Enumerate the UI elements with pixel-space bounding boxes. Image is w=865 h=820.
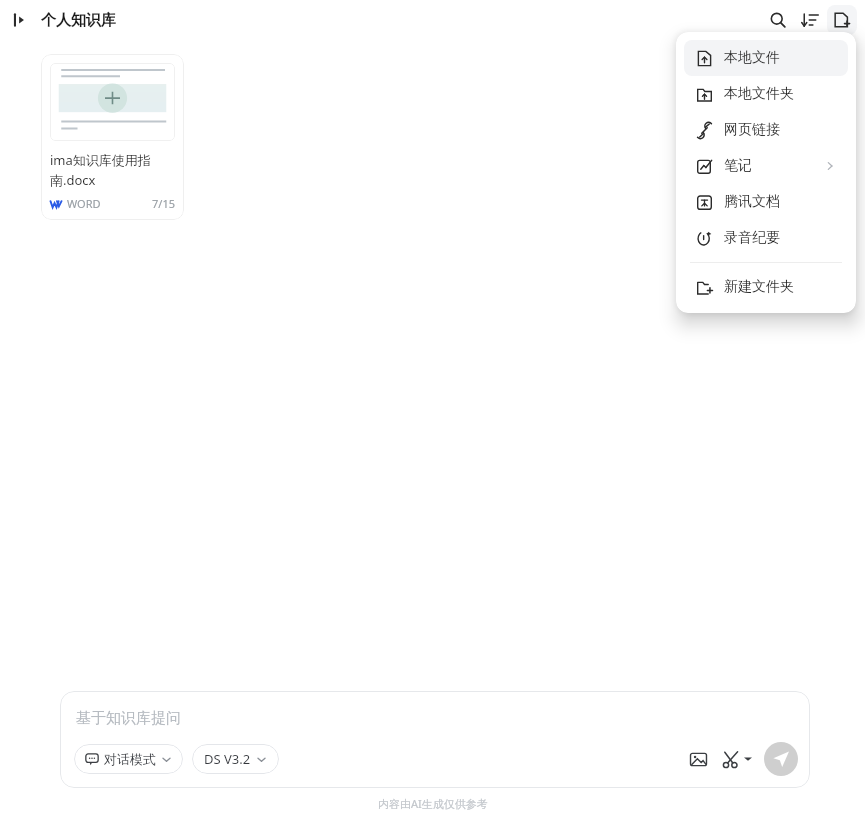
button[interactable]: 录音纪要 [684, 220, 848, 256]
staticText: 笔记 [724, 157, 752, 175]
staticText: DS V3.2 [204, 750, 251, 768]
button[interactable]: 笔记 [684, 148, 848, 184]
button[interactable]: ima知识库使用指南.docx [41, 54, 184, 220]
staticText: 对话模式 [104, 751, 156, 767]
button[interactable]: 网页链接 [684, 112, 848, 148]
button[interactable]: Clip [719, 749, 755, 769]
staticText: 新建文件夹 [724, 278, 794, 296]
button[interactable]: Insert image [683, 744, 713, 774]
button[interactable]: 本地文件 [684, 40, 848, 76]
button[interactable]: Toggle sidebar [6, 6, 34, 34]
button[interactable]: Send [764, 742, 798, 776]
staticText: 内容由AI生成仅供参考 [378, 796, 488, 811]
button[interactable]: Sort [795, 5, 825, 35]
staticText: 个人知识库 [41, 11, 116, 30]
button[interactable]: 新建文件夹 [684, 269, 848, 305]
staticText: 网页链接 [724, 121, 780, 139]
button[interactable]: Add document [827, 5, 857, 35]
staticText: 基于知识库提问 [76, 709, 181, 728]
staticText: 本地文件夹 [724, 85, 794, 103]
staticText: ima知识库使用指南.docx [50, 151, 175, 189]
staticText: 本地文件 [724, 49, 780, 67]
button[interactable]: 腾讯文档 [684, 184, 848, 220]
staticText: 腾讯文档 [724, 193, 780, 211]
button[interactable]: 本地文件夹 [684, 76, 848, 112]
button[interactable]: Search [763, 5, 793, 35]
staticText: 录音纪要 [724, 229, 780, 247]
staticText: 7/15 [152, 196, 175, 211]
staticText: WORD [67, 196, 101, 211]
button[interactable]: 对话模式 [74, 744, 183, 774]
button[interactable]: DS V3.2 [192, 744, 279, 774]
